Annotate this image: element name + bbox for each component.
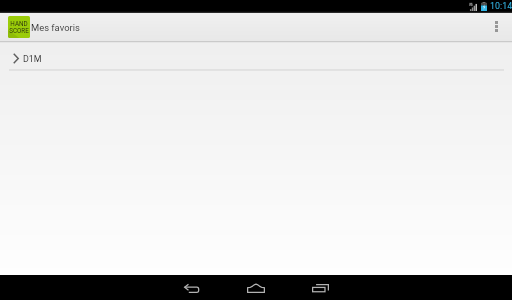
button[interactable]: Home <box>236 275 276 300</box>
staticText: Mes favoris <box>31 22 80 33</box>
staticText: HAND SCORE <box>9 20 29 34</box>
button[interactable]: Back <box>172 275 212 300</box>
button[interactable]: More options <box>480 13 512 41</box>
button[interactable]: Hand Score <box>8 16 30 38</box>
button[interactable]: D1M <box>0 43 512 69</box>
staticText: D1M <box>23 54 42 64</box>
staticText: 10:14 <box>490 1 512 11</box>
button[interactable]: Recent apps <box>300 275 340 300</box>
